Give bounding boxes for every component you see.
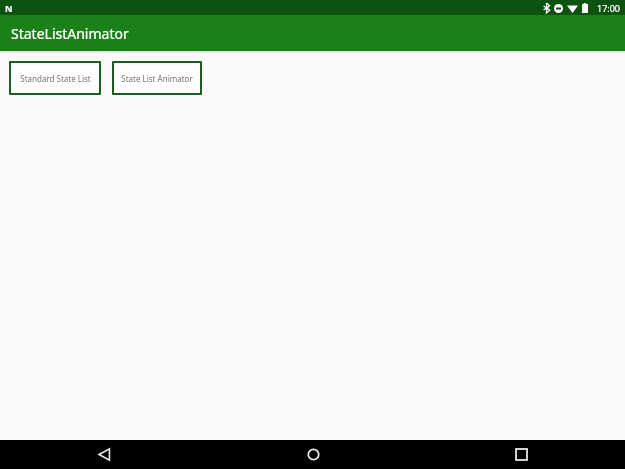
- button[interactable]: Recents: [417, 440, 625, 469]
- button[interactable]: Home: [209, 440, 417, 469]
- button[interactable]: Standard State List: [9, 61, 101, 95]
- staticText: 17:00: [597, 2, 621, 14]
- staticText: N: [5, 2, 13, 14]
- button[interactable]: State List Animator: [112, 61, 202, 95]
- button[interactable]: Back: [0, 440, 209, 469]
- staticText: State List Animator: [121, 73, 193, 84]
- staticText: Standard State List: [20, 73, 91, 84]
- staticText: StateListAnimator: [11, 24, 129, 43]
